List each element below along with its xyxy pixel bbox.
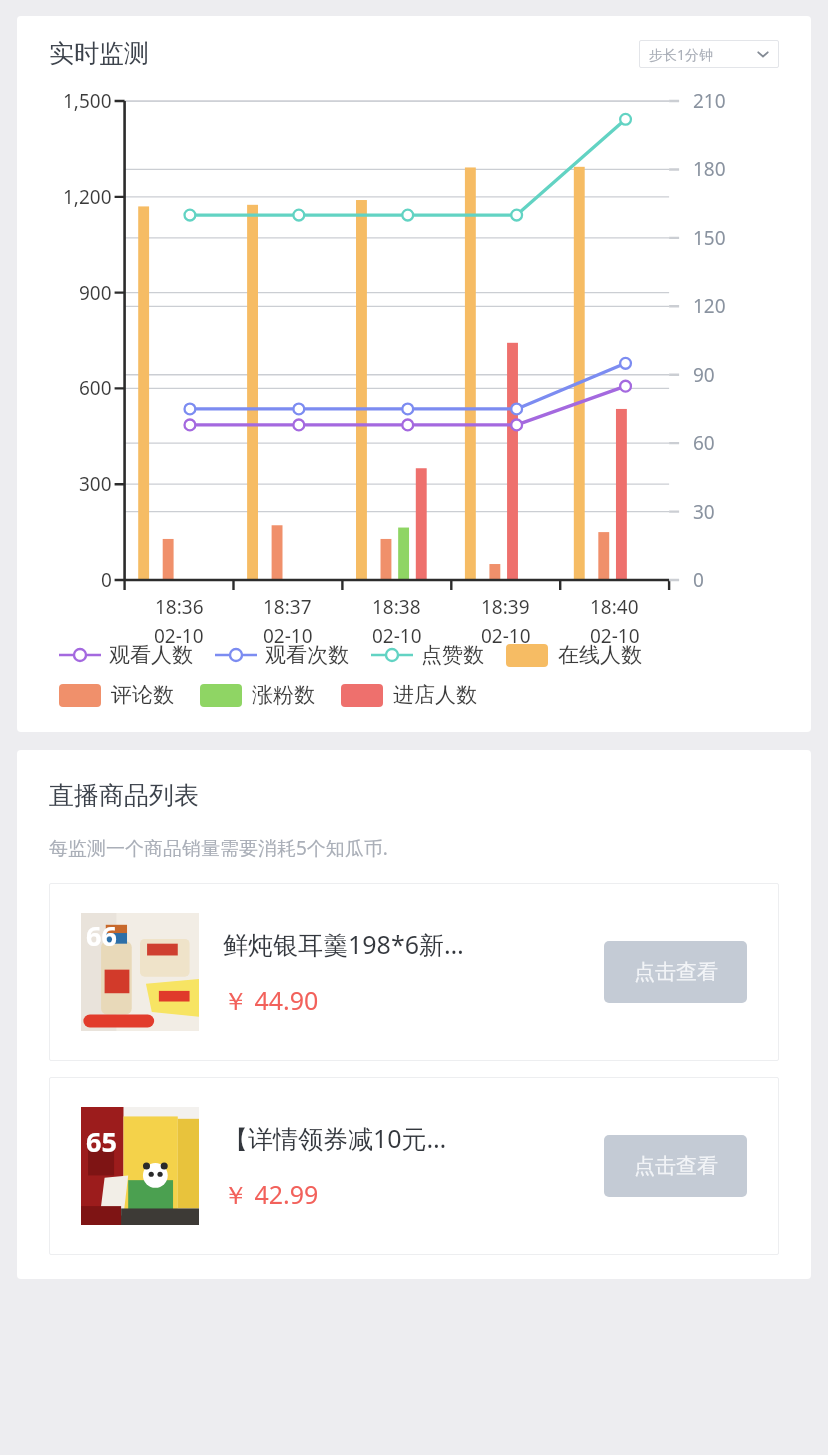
other: Expand: [756, 47, 770, 61]
staticText: 18:38: [372, 594, 421, 620]
button[interactable]: 点赞数: [371, 642, 484, 668]
staticText: 02-10: [590, 623, 640, 649]
staticText: 60: [693, 430, 715, 456]
button[interactable]: 点击查看: [604, 1135, 747, 1197]
staticText: 90: [693, 362, 715, 388]
staticText: 18:39: [481, 594, 530, 620]
button[interactable]: 观看人数: [59, 642, 193, 668]
button[interactable]: 66: [49, 883, 779, 1061]
staticText: 进店人数: [393, 682, 477, 708]
staticText: ￥ 44.90: [223, 983, 319, 1017]
staticText: 30: [693, 499, 715, 525]
button[interactable]: 进店人数: [341, 682, 477, 708]
staticText: 0: [101, 567, 112, 593]
staticText: 点赞数: [421, 642, 484, 668]
button[interactable]: 在线人数: [506, 642, 642, 668]
staticText: 鲜炖银耳羹198*6新…: [223, 927, 464, 961]
button[interactable]: 步长1分钟: [639, 40, 779, 68]
staticText: 观看人数: [109, 642, 193, 668]
staticText: 900: [79, 280, 112, 306]
staticText: 1,200: [63, 184, 112, 210]
staticText: 150: [693, 225, 726, 251]
staticText: 每监测一个商品销量需要消耗5个知瓜币.: [49, 835, 388, 861]
button[interactable]: 涨粉数: [200, 682, 315, 708]
staticText: 02-10: [481, 623, 531, 649]
button[interactable]: 点击查看: [604, 941, 747, 1003]
staticText: 02-10: [154, 623, 204, 649]
staticText: 0: [693, 567, 704, 593]
staticText: 【详情领券减10元…: [223, 1121, 447, 1155]
button[interactable]: 评论数: [59, 682, 174, 708]
staticText: 直播商品列表: [49, 780, 199, 811]
staticText: 66: [86, 917, 117, 954]
staticText: 18:40: [590, 594, 639, 620]
staticText: 02-10: [372, 623, 422, 649]
staticText: 210: [693, 88, 726, 114]
staticText: 120: [693, 293, 726, 319]
staticText: 600: [79, 375, 112, 401]
staticText: 涨粉数: [252, 682, 315, 708]
staticText: 点击查看: [634, 1153, 718, 1179]
staticText: 180: [693, 156, 726, 182]
staticText: 18:37: [263, 594, 312, 620]
staticText: 在线人数: [558, 642, 642, 668]
staticText: 02-10: [263, 623, 313, 649]
staticText: ￥ 42.99: [223, 1177, 319, 1211]
button[interactable]: 65: [49, 1077, 779, 1255]
staticText: 300: [79, 471, 112, 497]
staticText: 点击查看: [634, 959, 718, 985]
staticText: 18:36: [155, 594, 204, 620]
staticText: 1,500: [63, 88, 112, 114]
staticText: 实时监测: [49, 38, 149, 69]
button[interactable]: 观看次数: [215, 642, 349, 668]
staticText: 评论数: [111, 682, 174, 708]
staticText: 步长1分钟: [649, 45, 714, 64]
staticText: 65: [86, 1123, 117, 1160]
staticText: 观看次数: [265, 642, 349, 668]
